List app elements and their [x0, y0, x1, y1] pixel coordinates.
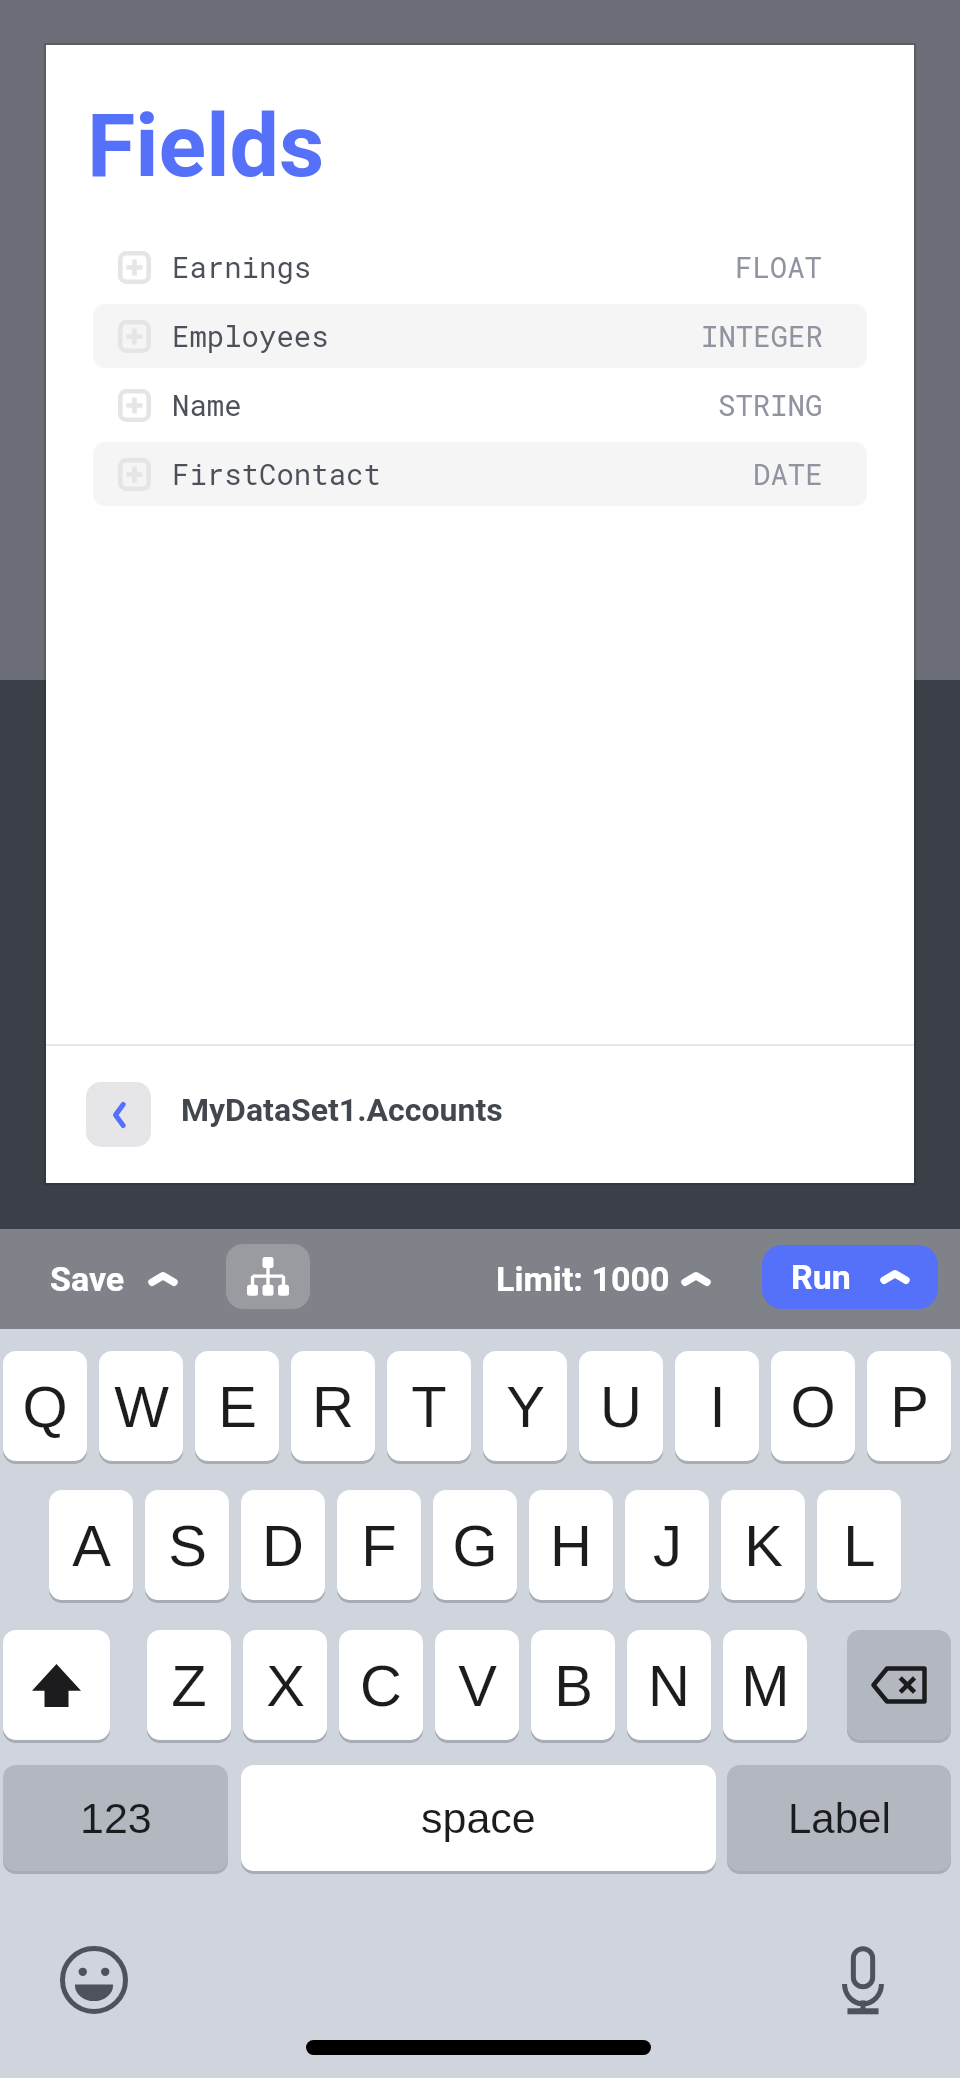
button[interactable]: I	[675, 1351, 759, 1461]
button[interactable]: O	[771, 1351, 855, 1461]
staticText: H	[550, 1513, 592, 1578]
button[interactable]: Q	[3, 1351, 87, 1461]
button[interactable]: A	[49, 1490, 133, 1600]
button[interactable]: N	[627, 1630, 711, 1740]
button[interactable]: P	[867, 1351, 951, 1461]
button[interactable]: T	[387, 1351, 471, 1461]
button[interactable]: F	[337, 1490, 421, 1600]
staticText: space	[421, 1794, 536, 1842]
staticText: FirstContact	[172, 455, 381, 493]
staticText: G	[452, 1513, 498, 1578]
button[interactable]: J	[625, 1490, 709, 1600]
button[interactable]: K	[721, 1490, 805, 1600]
staticText: X	[266, 1653, 305, 1718]
staticText: Limit: 1000	[496, 1259, 670, 1299]
staticText: MyDataSet1.Accounts	[181, 1091, 503, 1129]
staticText: F	[361, 1513, 397, 1578]
button[interactable]: 123	[3, 1765, 228, 1871]
staticText: W	[114, 1374, 169, 1439]
button[interactable]: Voice input	[825, 1942, 901, 2018]
staticText: Y	[506, 1374, 545, 1439]
button[interactable]: Z	[147, 1630, 231, 1740]
button[interactable]: M	[723, 1630, 807, 1740]
staticText: P	[890, 1374, 929, 1439]
button[interactable]: Label	[727, 1765, 951, 1871]
staticText: INTEGER	[701, 317, 823, 355]
staticText: T	[411, 1374, 447, 1439]
staticText: A	[72, 1513, 111, 1578]
staticText: Save	[50, 1259, 125, 1299]
staticText: O	[790, 1374, 836, 1439]
staticText: I	[709, 1374, 726, 1439]
button[interactable]: Y	[483, 1351, 567, 1461]
button[interactable]: Emoji	[56, 1942, 132, 2018]
button[interactable]: S	[145, 1490, 229, 1600]
staticText: L	[843, 1513, 876, 1578]
staticText: B	[554, 1653, 593, 1718]
button[interactable]: Run	[762, 1245, 938, 1309]
button[interactable]: Backspace	[847, 1630, 951, 1740]
button[interactable]: W	[99, 1351, 183, 1461]
staticText: Name	[172, 386, 242, 424]
button[interactable]: Back	[86, 1082, 151, 1147]
button[interactable]: L	[817, 1490, 901, 1600]
button[interactable]: space	[241, 1765, 716, 1871]
staticText: Run	[791, 1257, 851, 1297]
button[interactable]: G	[433, 1490, 517, 1600]
staticText: Q	[22, 1374, 68, 1439]
button[interactable]: U	[579, 1351, 663, 1461]
button[interactable]: V	[435, 1630, 519, 1740]
staticText: Employees	[172, 317, 329, 355]
button[interactable]: X	[243, 1630, 327, 1740]
button[interactable]: Limit: 1000	[496, 1247, 711, 1311]
button[interactable]: FirstContact	[93, 442, 867, 506]
button[interactable]: Earnings	[93, 235, 867, 299]
staticText: C	[360, 1653, 402, 1718]
button[interactable]: E	[195, 1351, 279, 1461]
button[interactable]: R	[291, 1351, 375, 1461]
staticText: Z	[171, 1653, 207, 1718]
staticText: Fields	[87, 94, 325, 197]
button[interactable]: H	[529, 1490, 613, 1600]
button[interactable]: Employees	[93, 304, 867, 368]
staticText: S	[168, 1513, 207, 1578]
button[interactable]: Schema	[226, 1244, 310, 1309]
button[interactable]: C	[339, 1630, 423, 1740]
staticText: R	[312, 1374, 354, 1439]
button[interactable]: Shift	[3, 1630, 110, 1740]
button[interactable]: B	[531, 1630, 615, 1740]
staticText: U	[600, 1374, 642, 1439]
staticText: STRING	[718, 386, 823, 424]
staticText: M	[741, 1653, 790, 1718]
staticText: V	[458, 1653, 497, 1718]
staticText: N	[648, 1653, 690, 1718]
staticText: Earnings	[172, 248, 312, 286]
staticText: D	[262, 1513, 304, 1578]
staticText: FLOAT	[735, 248, 823, 286]
staticText: Label	[788, 1795, 891, 1842]
staticText: 123	[80, 1794, 152, 1842]
staticText: E	[218, 1374, 257, 1439]
staticText: J	[653, 1513, 682, 1578]
staticText: DATE	[753, 455, 823, 493]
button[interactable]: D	[241, 1490, 325, 1600]
button[interactable]: Name	[93, 373, 867, 437]
button[interactable]: Save	[50, 1247, 178, 1311]
staticText: K	[744, 1513, 783, 1578]
